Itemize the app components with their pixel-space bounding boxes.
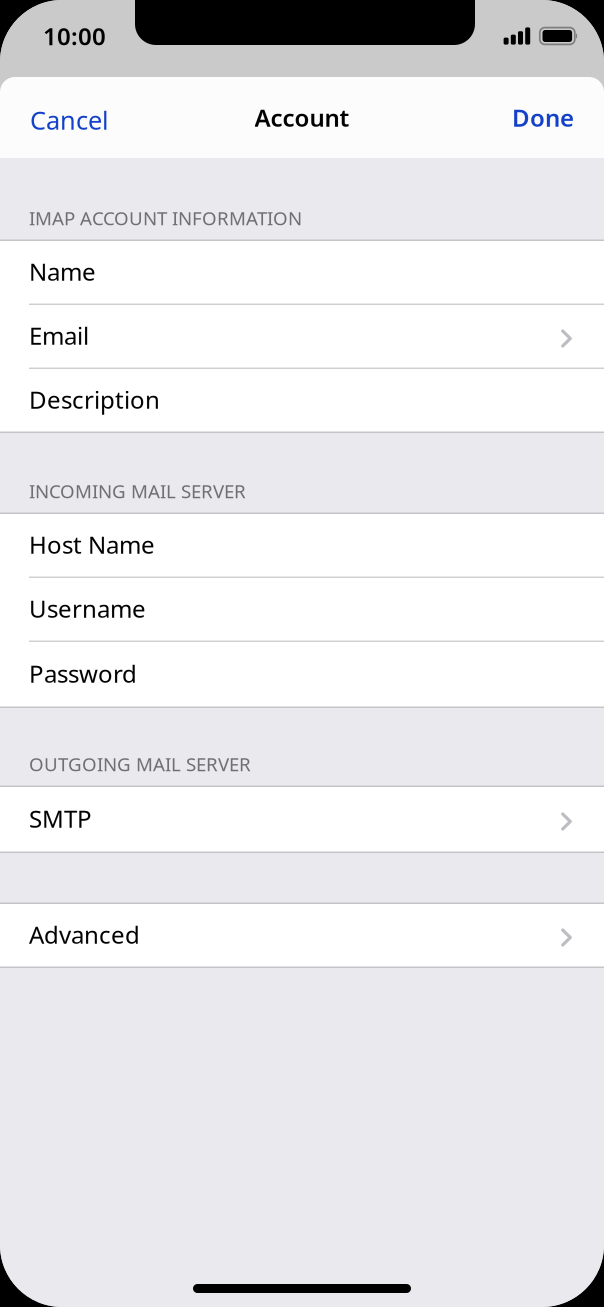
staticText: 10:00	[43, 20, 106, 52]
button[interactable]: Host Name	[0, 514, 604, 578]
staticText: Email	[29, 320, 89, 351]
staticText: Description	[29, 384, 160, 415]
staticText: Name	[29, 256, 96, 287]
button[interactable]: Email	[0, 305, 604, 369]
button[interactable]: Cancel	[0, 77, 109, 158]
button[interactable]: Password	[0, 642, 604, 708]
button[interactable]: Username	[0, 578, 604, 642]
button[interactable]: Description	[0, 369, 604, 433]
staticText: Host Name	[29, 529, 155, 560]
staticText: Advanced	[29, 919, 140, 950]
staticText: IMAP ACCOUNT INFORMATION	[29, 206, 302, 230]
button[interactable]: Advanced	[0, 904, 604, 968]
button[interactable]: Name	[0, 241, 604, 305]
button[interactable]: Done	[512, 77, 604, 158]
staticText: Account	[254, 102, 349, 133]
staticText: OUTGOING MAIL SERVER	[29, 752, 251, 776]
staticText: SMTP	[29, 803, 92, 834]
staticText: Cancel	[30, 103, 109, 137]
staticText: INCOMING MAIL SERVER	[29, 479, 246, 503]
staticText: Username	[29, 593, 146, 624]
staticText: Password	[29, 658, 137, 689]
button[interactable]: SMTP	[0, 787, 604, 853]
staticText: Done	[512, 102, 574, 133]
